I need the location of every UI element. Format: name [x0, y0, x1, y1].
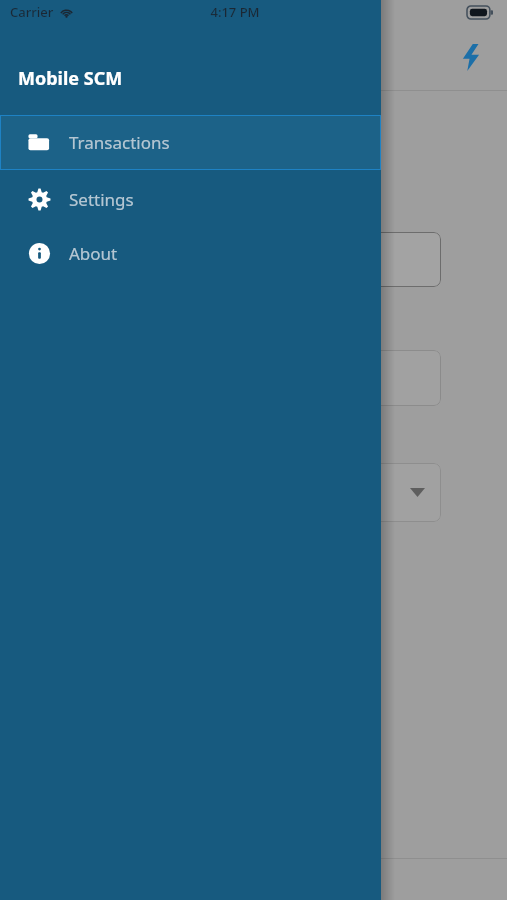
button[interactable]: Scan	[447, 34, 493, 80]
button[interactable]	[300, 463, 441, 522]
staticText: Settings	[69, 188, 134, 211]
staticText: Transactions	[69, 131, 170, 154]
staticText: About	[69, 242, 118, 265]
button[interactable]: About	[0, 228, 381, 278]
button[interactable]: Transactions	[0, 115, 381, 170]
button[interactable]: Settings	[0, 174, 381, 224]
staticText: 4:17 PM	[210, 3, 260, 21]
other: Transactions	[27, 131, 51, 155]
other: Settings	[28, 188, 51, 211]
staticText: Carrier	[10, 3, 54, 21]
staticText: Mobile SCM	[18, 66, 123, 91]
other: About	[28, 242, 51, 265]
